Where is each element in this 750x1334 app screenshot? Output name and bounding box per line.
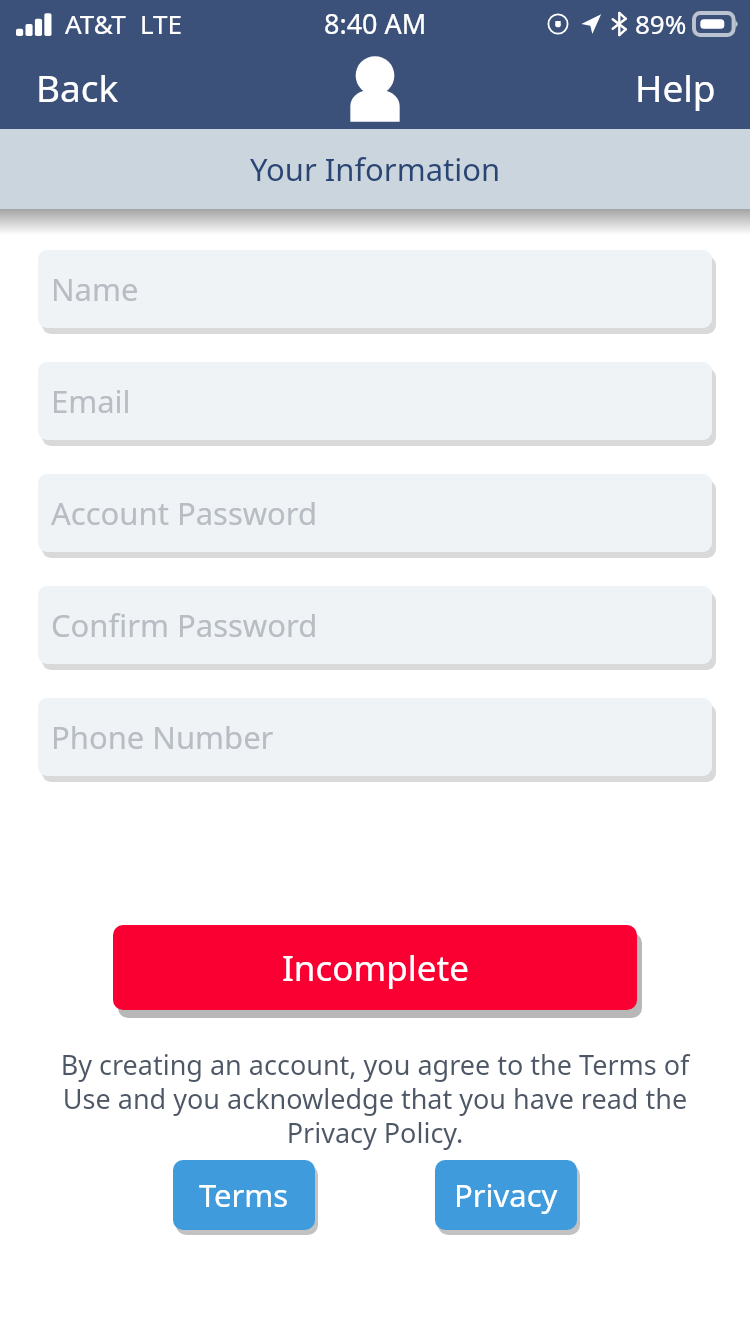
button[interactable]: Back (22, 56, 133, 118)
button[interactable]: Confirm Password (38, 586, 712, 664)
button[interactable]: Email (38, 362, 712, 440)
button[interactable]: Phone Number (38, 698, 712, 776)
staticText: Help (635, 62, 716, 112)
staticText: AT&T (65, 6, 126, 41)
staticText: Phone Number (51, 716, 274, 758)
staticText: Name (51, 268, 139, 310)
staticText: Back (36, 62, 119, 112)
staticText: 8:40 AM (324, 5, 427, 42)
staticText: Confirm Password (51, 604, 318, 646)
staticText: 89% (635, 6, 687, 41)
button[interactable]: Help (621, 56, 730, 118)
staticText: LTE (140, 6, 183, 41)
button[interactable]: Privacy (435, 1160, 577, 1230)
staticText: Email (51, 380, 131, 422)
staticText: Privacy (454, 1174, 558, 1216)
staticText: By creating an account, you agree to the… (50, 1046, 700, 1151)
button[interactable]: Name (38, 250, 712, 328)
button[interactable]: Profile (330, 50, 420, 124)
button[interactable]: Terms (173, 1160, 315, 1230)
button[interactable]: Incomplete (113, 925, 637, 1010)
staticText: Incomplete (282, 944, 469, 992)
staticText: Terms (199, 1174, 289, 1216)
button[interactable]: Account Password (38, 474, 712, 552)
staticText: Your Information (250, 148, 501, 190)
staticText: Account Password (51, 492, 318, 534)
